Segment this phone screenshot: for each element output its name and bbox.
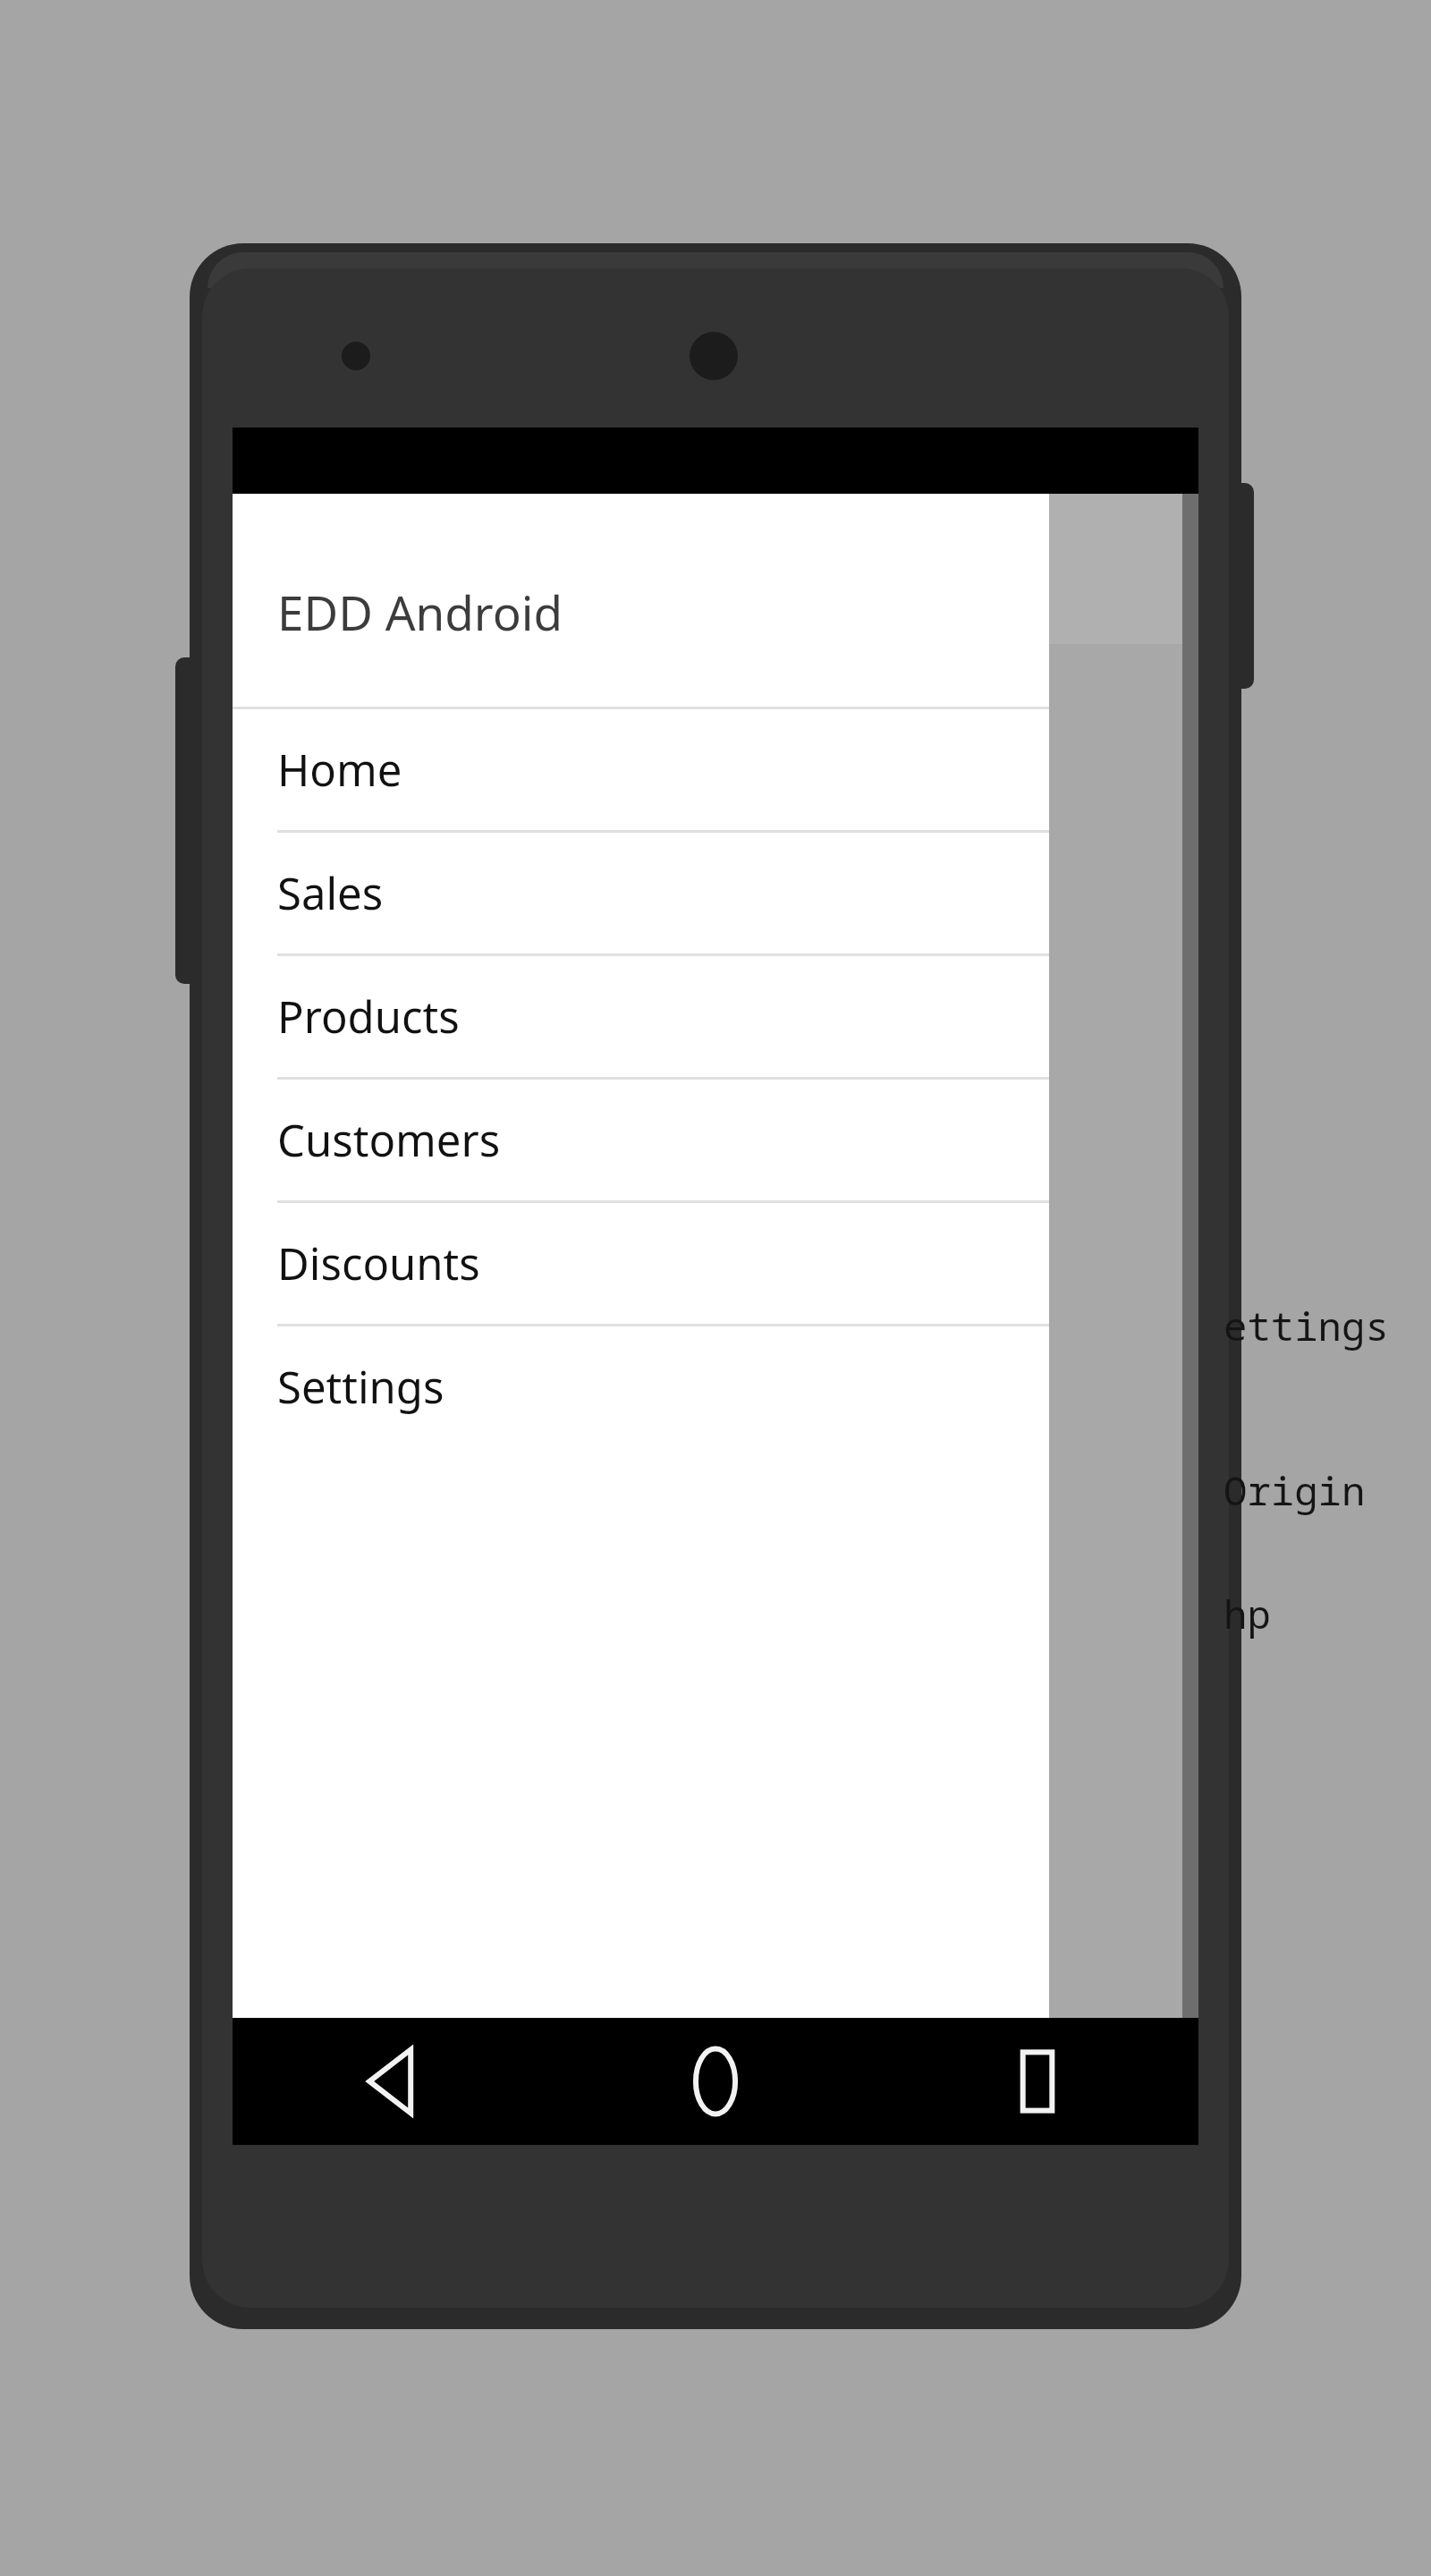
staticText: Sales — [277, 863, 384, 923]
button[interactable]: Discounts — [233, 1203, 1049, 1324]
button[interactable]: Settings — [233, 1326, 1049, 1447]
staticText: Settings — [277, 1357, 445, 1417]
button[interactable]: EDD Android — [233, 494, 1049, 707]
button[interactable]: Recent apps — [876, 2018, 1198, 2145]
button[interactable]: Products — [233, 956, 1049, 1077]
button[interactable]: Home — [555, 2018, 876, 2145]
button[interactable]: Customers — [233, 1080, 1049, 1200]
staticText: EDD Android — [277, 580, 563, 644]
button[interactable]: Home — [233, 709, 1049, 830]
staticText: Discounts — [277, 1233, 480, 1293]
staticText: Origin — [1224, 1463, 1366, 1517]
staticText: Customers — [277, 1110, 501, 1170]
button[interactable]: Sales — [233, 833, 1049, 953]
staticText: Products — [277, 987, 460, 1046]
button[interactable]: Back — [233, 2018, 555, 2145]
staticText: ettings — [1224, 1299, 1389, 1352]
staticText: Home — [277, 740, 402, 800]
staticText: hp — [1224, 1587, 1271, 1640]
